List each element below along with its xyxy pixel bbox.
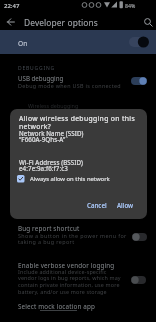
staticText: Wireless debugging <box>28 102 79 109</box>
button[interactable] <box>114 198 137 210</box>
button[interactable] <box>84 198 109 210</box>
button[interactable] <box>141 15 155 29</box>
staticText: Allow wireless debugging on this network… <box>19 114 136 131</box>
staticText: USB debugging <box>18 74 64 82</box>
staticText: Wi-Fi Address (BSSID) <box>19 158 84 166</box>
staticText: 22:47 <box>4 2 20 10</box>
staticText: e4:7e:9a:f6:f7:c3 <box>19 164 68 172</box>
staticText: On <box>18 39 28 48</box>
staticText: Include additional device-specific vendo… <box>18 268 121 296</box>
staticText: Debug mode when USB is connected <box>18 82 121 89</box>
button[interactable] <box>0 259 156 299</box>
staticText: Allow <box>117 201 134 209</box>
staticText: Always allow on this network <box>30 175 110 183</box>
staticText: Show a button in the power menu for taki… <box>18 232 127 246</box>
staticText: Cancel <box>87 201 107 209</box>
button[interactable] <box>4 15 17 28</box>
button[interactable] <box>0 299 156 317</box>
button[interactable]: On <box>0 30 156 54</box>
staticText: “F660A-9Qhs-A” <box>19 135 66 143</box>
staticText: Select mock location app <box>18 302 95 311</box>
button[interactable] <box>131 77 147 85</box>
button[interactable]: Always allow on this network <box>17 175 110 183</box>
button[interactable] <box>131 276 146 284</box>
staticText: Network Name (SSID) <box>19 129 84 137</box>
button[interactable] <box>132 233 147 241</box>
staticText: Bug report shortcut <box>18 224 80 233</box>
button[interactable] <box>0 222 156 250</box>
staticText: Developer options <box>24 17 98 28</box>
staticText: Enable verbose vendor logging <box>18 261 115 270</box>
button[interactable] <box>0 71 156 91</box>
staticText: DEBUGGING <box>18 65 55 72</box>
staticText: 84% <box>125 2 136 9</box>
